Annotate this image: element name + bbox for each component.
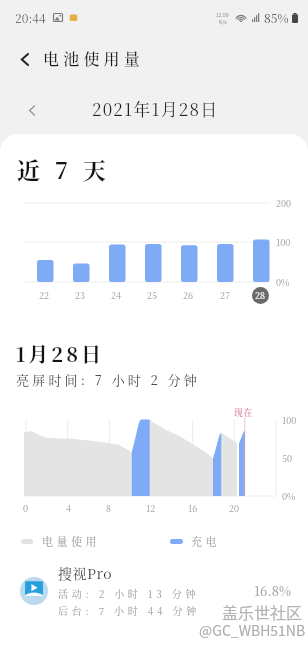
staticText: 12: [146, 502, 156, 515]
staticText: 16.8%: [254, 581, 291, 600]
button[interactable]: Back: [9, 43, 41, 75]
staticText: 27: [220, 289, 230, 302]
staticText: 100: [276, 236, 291, 249]
staticText: 100: [282, 414, 297, 427]
staticText: 现在: [234, 406, 254, 419]
button[interactable]: 电量使用: [21, 533, 100, 549]
button[interactable]: 25: [144, 287, 161, 304]
staticText: @GC_WBH51NB: [199, 620, 306, 640]
staticText: 28: [255, 289, 266, 302]
staticText: 24: [111, 289, 122, 302]
staticText: 16: [188, 502, 198, 515]
staticText: 2021年1月28日: [92, 96, 219, 120]
staticText: 电池使用量: [43, 47, 145, 70]
staticText: 12.50: [216, 11, 229, 18]
staticText: 20:44: [15, 9, 46, 26]
staticText: 20: [229, 502, 240, 515]
button[interactable]: 搜视Pro: [0, 558, 308, 622]
staticText: 8: [106, 502, 112, 515]
button[interactable]: 28: [252, 287, 269, 304]
button[interactable]: 22: [36, 287, 53, 304]
staticText: 50: [282, 452, 293, 465]
staticText: 充电: [191, 533, 220, 549]
staticText: 0%: [276, 276, 290, 289]
button[interactable]: 24: [108, 287, 125, 304]
staticText: 盖乐世社区: [222, 600, 303, 623]
staticText: 亮屏时间: 7 小时 2 分钟: [16, 370, 200, 389]
staticText: 4: [66, 502, 71, 515]
staticText: 22: [39, 289, 50, 302]
staticText: 25: [147, 289, 158, 302]
button[interactable]: 充电: [170, 533, 220, 549]
staticText: 1月28日: [16, 339, 105, 368]
button[interactable]: 27: [216, 287, 233, 304]
staticText: 电量使用: [42, 533, 100, 549]
staticText: 近 7 天: [17, 153, 111, 186]
staticText: 0: [23, 502, 29, 515]
staticText: K/s: [219, 18, 227, 25]
staticText: 0%: [282, 490, 296, 503]
staticText: 搜视Pro: [58, 563, 112, 583]
staticText: 后台: 7 小时 44 分钟: [58, 603, 200, 617]
staticText: 活动: 2 小时 13 分钟: [58, 586, 200, 600]
button[interactable]: Previous day: [18, 96, 46, 124]
button[interactable]: 23: [72, 287, 89, 304]
staticText: 200: [276, 197, 292, 210]
staticText: 23: [75, 289, 86, 302]
staticText: 85%: [264, 9, 289, 26]
button[interactable]: 26: [180, 287, 197, 304]
staticText: 26: [183, 289, 194, 302]
